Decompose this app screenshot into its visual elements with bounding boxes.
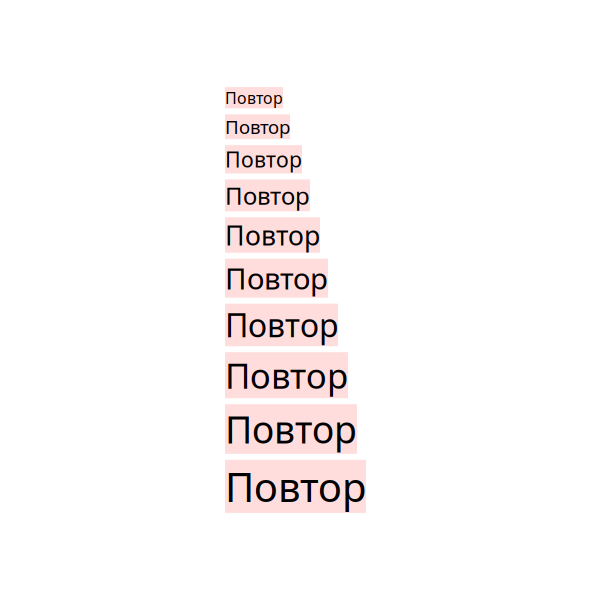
staticText: Повтор	[225, 460, 366, 513]
staticText: Повтор	[225, 114, 290, 139]
staticText: Повтор	[225, 179, 310, 211]
staticText: Повтор	[225, 87, 283, 108]
staticText: Повтор	[225, 304, 338, 346]
staticText: Повтор	[225, 217, 320, 253]
staticText: Повтор	[225, 404, 357, 454]
staticText: Повтор	[225, 259, 328, 298]
staticText: Повтор	[225, 145, 302, 173]
staticText: Повтор	[225, 352, 348, 398]
